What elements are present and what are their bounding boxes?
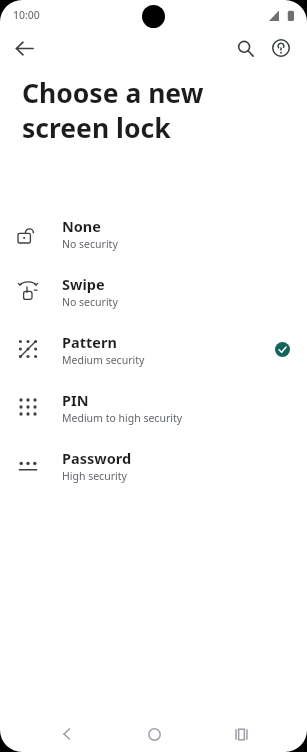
staticText: Medium security	[62, 353, 145, 367]
staticText: Choose a new screen lock	[22, 75, 204, 146]
staticText: Pattern	[62, 332, 117, 352]
button[interactable]: Password	[0, 436, 307, 494]
staticText: Swipe	[62, 274, 105, 294]
button[interactable]: Help	[263, 30, 299, 66]
button[interactable]: None	[0, 204, 307, 262]
button[interactable]: Back	[46, 716, 88, 752]
button[interactable]: Back	[6, 30, 42, 66]
staticText: Password	[62, 448, 132, 468]
staticText: No security	[62, 295, 118, 309]
staticText: Medium to high security	[62, 411, 183, 425]
button[interactable]: Pattern	[0, 320, 307, 378]
button[interactable]: Recent apps	[220, 716, 262, 752]
button[interactable]: Search	[227, 30, 263, 66]
button[interactable]: PIN	[0, 378, 307, 436]
button[interactable]: Swipe	[0, 262, 307, 320]
staticText: None	[62, 216, 101, 236]
staticText: High security	[62, 469, 127, 483]
staticText: PIN	[62, 390, 89, 410]
staticText: 10:00	[13, 8, 40, 22]
button[interactable]: Home	[133, 716, 175, 752]
staticText: No security	[62, 237, 118, 251]
